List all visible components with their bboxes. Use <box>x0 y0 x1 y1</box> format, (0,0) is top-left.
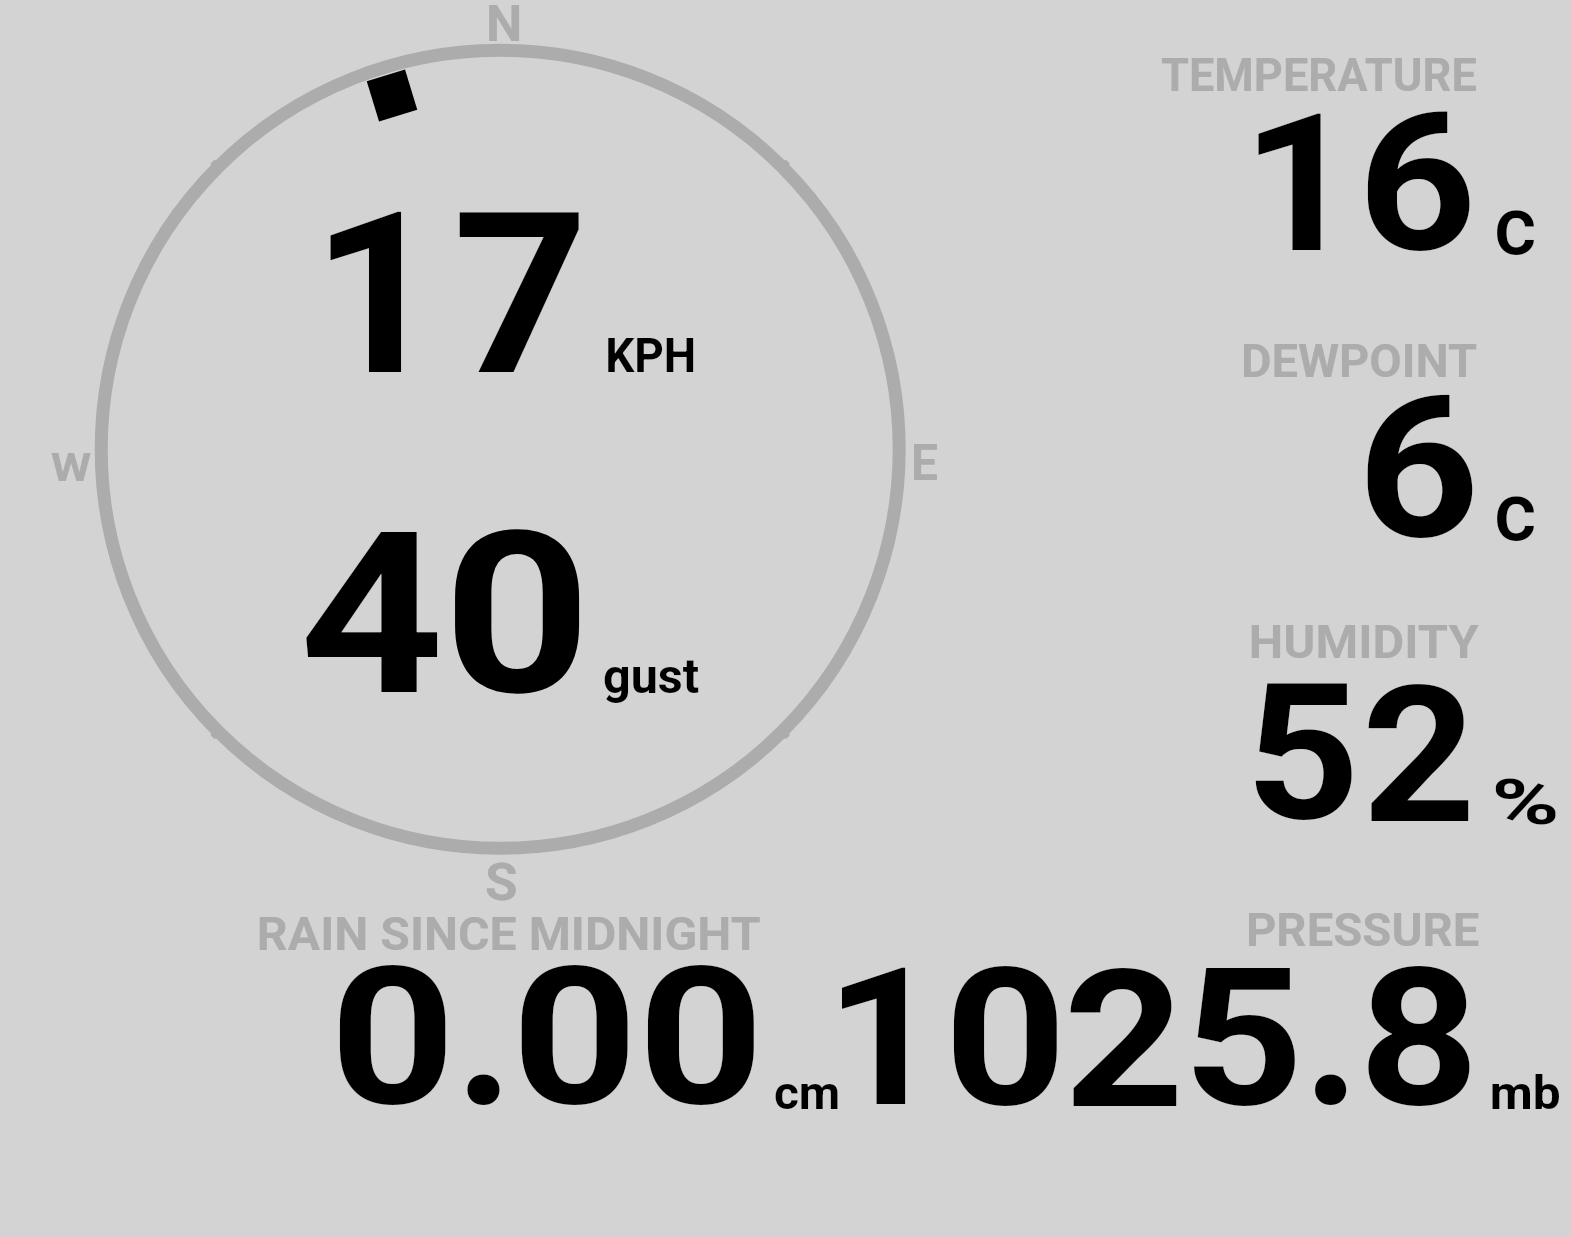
button[interactable]: Humidity 52 percent <box>1100 590 1571 860</box>
button[interactable]: Pressure 1025.8 millibars <box>870 900 1570 1130</box>
button[interactable]: Wind 17 KPH, gusting 40, direction north… <box>60 0 950 900</box>
button[interactable]: Dewpoint 6 degrees Celsius <box>1100 300 1571 570</box>
button[interactable]: Temperature 16 degrees Celsius <box>1100 30 1571 290</box>
button[interactable]: Rain since midnight 0.00 cm <box>240 900 860 1130</box>
